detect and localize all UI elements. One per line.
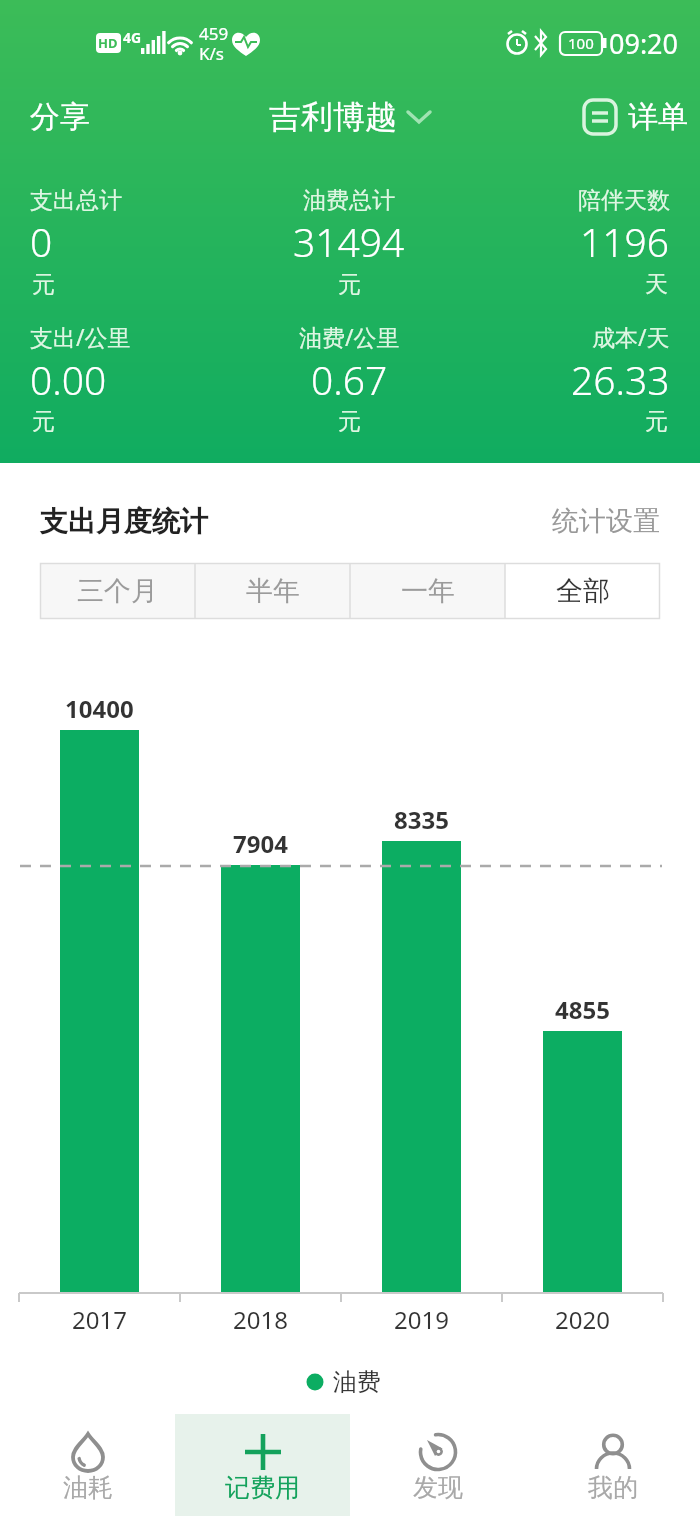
staticText: 分享 [30,98,90,136]
staticText: 我的 [588,1472,638,1502]
staticText: 支出/公里 [30,321,131,352]
staticText: 0.67 [311,353,388,406]
staticText: 支出总计 [30,186,122,215]
staticText: 100 [568,33,594,53]
staticText: 元 [338,270,361,299]
staticText: 2018 [233,1303,288,1336]
button[interactable]: 我的 [525,1414,700,1516]
staticText: 油费/公里 [299,321,400,352]
staticText: 记费用 [225,1472,300,1502]
staticText: 元 [645,407,668,436]
staticText: 1196 [580,215,670,268]
button[interactable]: 记费用 [175,1414,350,1516]
staticText: HD [98,34,118,52]
staticText: 26.33 [571,353,670,406]
button[interactable]: 吉利博越 [269,97,431,137]
staticText: 0 [30,215,53,268]
staticText: 成本/天 [592,321,670,352]
staticText: 0.00 [30,353,107,406]
staticText: 09:20 [609,25,679,62]
staticText: 459 [199,22,229,45]
staticText: 三个月 [77,574,158,608]
staticText: 31494 [293,215,405,268]
staticText: 统计设置 [552,504,660,538]
staticText: 元 [338,407,361,436]
staticText: K/s [199,42,224,65]
staticText: 详单 [628,98,688,136]
staticText: 陪伴天数 [578,186,670,215]
staticText: 油费总计 [303,186,395,215]
staticText: 2019 [394,1303,449,1336]
button[interactable]: 详单 [583,98,688,136]
staticText: 半年 [246,574,300,608]
staticText: 元 [32,407,55,436]
button[interactable]: 三个月 [40,563,195,619]
staticText: 吉利博越 [269,97,397,137]
staticText: 2017 [72,1303,127,1336]
staticText: 7904 [233,827,288,860]
staticText: 发现 [413,1472,463,1502]
staticText: 支出月度统计 [40,504,208,539]
button[interactable]: 油耗 [0,1414,175,1516]
staticText: 8335 [394,803,449,836]
button[interactable]: 一年 [350,563,505,619]
staticText: 一年 [401,574,455,608]
staticText: 2020 [555,1303,610,1336]
button[interactable]: 发现 [350,1414,525,1516]
staticText: 油费 [333,1367,381,1397]
staticText: 天 [645,270,668,299]
button[interactable]: 半年 [195,563,350,619]
staticText: 油耗 [63,1472,113,1502]
staticText: 全部 [556,574,610,608]
staticText: 4G [123,28,142,47]
button[interactable]: 统计设置 [320,491,660,551]
staticText: 10400 [65,692,134,725]
staticText: 4855 [555,993,610,1026]
button[interactable]: 全部 [505,563,660,619]
button[interactable]: 分享 [20,88,100,146]
staticText: 元 [32,270,55,299]
